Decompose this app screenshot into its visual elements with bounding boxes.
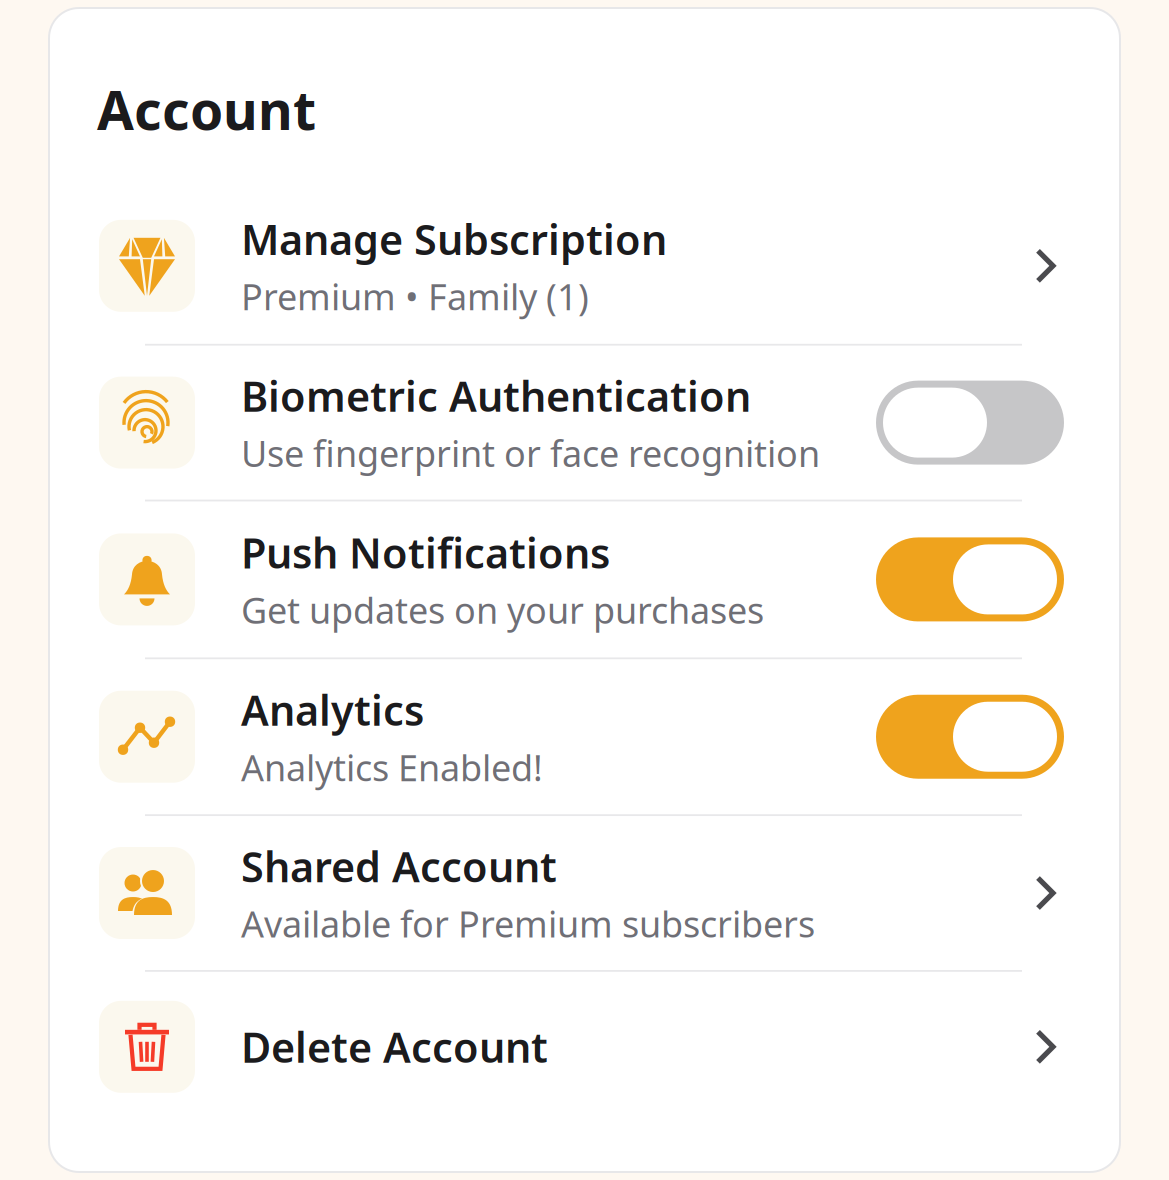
staticText: Biometric Authentication (241, 368, 751, 423)
button[interactable]: Biometric Authentication, off (876, 381, 1064, 465)
button[interactable]: Push Notifications (49, 501, 1120, 657)
staticText: Manage Subscription (241, 211, 667, 266)
staticText: Analytics (241, 682, 424, 737)
staticText: Available for Premium subscribers (241, 900, 815, 947)
staticText: Use fingerprint or face recognition (241, 429, 820, 477)
button[interactable]: Manage Subscription (49, 188, 1120, 344)
staticText: Shared Account (241, 839, 557, 894)
button[interactable]: Biometric Authentication (49, 346, 1120, 500)
button[interactable]: Shared Account (49, 816, 1120, 970)
button[interactable]: Push Notifications, on (876, 537, 1064, 621)
staticText: Delete Account (241, 1019, 548, 1074)
staticText: Analytics Enabled! (241, 743, 543, 791)
button[interactable]: Analytics, on (876, 695, 1064, 779)
button[interactable]: Delete Account (49, 972, 1120, 1122)
staticText: Account (97, 74, 316, 145)
staticText: Push Notifications (241, 525, 610, 580)
staticText: Get updates on your purchases (241, 586, 764, 634)
button[interactable]: Analytics (49, 659, 1120, 814)
staticText: Premium • Family (1) (241, 272, 589, 320)
